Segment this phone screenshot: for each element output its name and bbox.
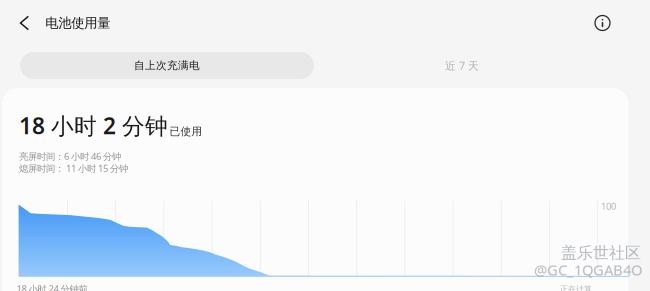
button[interactable]: Information xyxy=(581,5,650,40)
staticText: 电池使用量 xyxy=(45,15,110,31)
staticText: 18 小时 24 分钟前 xyxy=(16,282,87,291)
staticText: 正在计算… xyxy=(560,283,598,291)
staticText: 熄屏时间： 11 小时 15 分钟 xyxy=(19,162,128,174)
staticText: @GC_1QGAB4O xyxy=(534,260,642,279)
staticText: 盖乐世社区 xyxy=(561,243,641,263)
staticText: 自上次充满电 xyxy=(134,59,200,72)
staticText: 已使用 xyxy=(169,125,202,138)
staticText: 近 7 天 xyxy=(445,58,479,73)
button[interactable]: 自上次充满电 xyxy=(20,52,314,79)
button[interactable]: Back xyxy=(0,7,45,39)
staticText: 18 小时 2 分钟 xyxy=(19,110,168,141)
staticText: 亮屏时间：6 小时 46 分钟 xyxy=(19,150,121,162)
staticText: 100 xyxy=(601,200,616,212)
button[interactable]: 近 7 天 xyxy=(314,52,610,79)
